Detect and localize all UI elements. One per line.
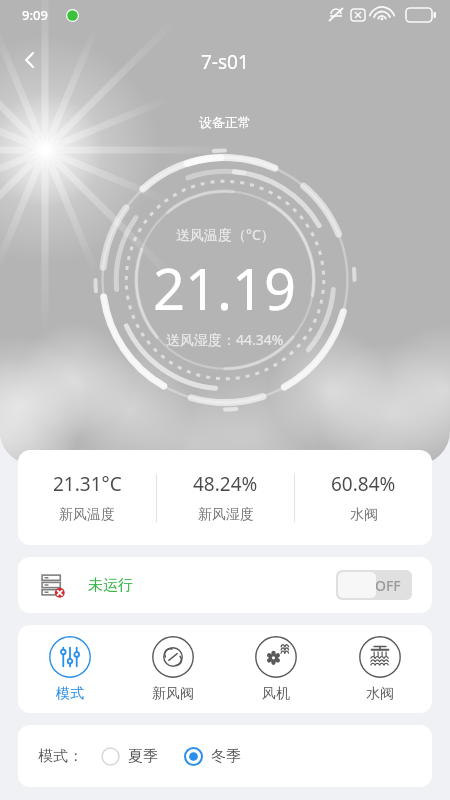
button[interactable]: 新风阀 (121, 625, 224, 713)
staticText: 7-s01 (201, 49, 249, 75)
button[interactable]: 风机 (224, 625, 328, 713)
staticText: 48.24% (193, 471, 258, 497)
staticText: 60.84% (331, 471, 396, 497)
staticText: 送风湿度：44.34% (166, 330, 284, 349)
staticText: 模式： (38, 747, 83, 766)
staticText: 水阀 (350, 506, 378, 524)
button[interactable]: 水阀 (328, 625, 432, 713)
button[interactable]: 模式 (18, 625, 121, 713)
staticText: 模式 (56, 685, 84, 703)
button[interactable]: 冬季 (184, 747, 241, 766)
staticText: 新风阀 (152, 685, 194, 703)
staticText: 未运行 (88, 576, 133, 595)
button[interactable]: 21.31°C (18, 450, 432, 545)
staticText: 水阀 (366, 685, 394, 703)
button[interactable]: Power toggle OFF (336, 570, 412, 600)
staticText: 设备正常 (199, 114, 251, 130)
staticText: 风机 (262, 685, 290, 703)
button[interactable]: 夏季 (101, 747, 158, 766)
staticText: 夏季 (128, 747, 158, 766)
button[interactable]: Back (8, 38, 52, 82)
staticText: 送风温度（°C） (176, 225, 275, 244)
staticText: 9:09 (22, 6, 48, 24)
staticText: 冬季 (211, 747, 241, 766)
staticText: 21.31°C (53, 471, 122, 497)
staticText: 21.19 (153, 250, 297, 326)
staticText: 新风温度 (59, 506, 115, 524)
staticText: 新风湿度 (198, 506, 254, 524)
other: Device status (40, 572, 66, 598)
staticText: OFF (375, 576, 401, 595)
button[interactable]: Device status (18, 557, 432, 613)
